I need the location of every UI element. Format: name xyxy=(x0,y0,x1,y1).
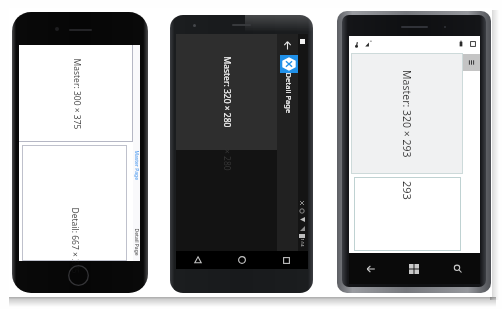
staticText: Master Page xyxy=(132,150,139,180)
button[interactable]: Back xyxy=(349,253,392,284)
button[interactable]: Back xyxy=(176,251,220,269)
staticText: Detail Page xyxy=(283,72,293,113)
other: Navigate up xyxy=(282,40,293,51)
button[interactable]: Home xyxy=(220,251,264,269)
staticText: 1:14 xyxy=(299,238,304,246)
staticText: Master: 320 × 280 xyxy=(220,56,232,127)
staticText: 293 xyxy=(400,181,415,200)
button[interactable]: Search xyxy=(436,253,480,284)
staticText: × 280 xyxy=(221,149,233,171)
button[interactable]: Recent apps xyxy=(264,251,308,269)
staticText: Detail: 667 × 375 xyxy=(68,207,80,274)
staticText: Master: 300 × 375 xyxy=(70,58,82,129)
staticText: Detail Page xyxy=(132,228,139,256)
button[interactable]: Resize xyxy=(463,54,480,71)
button[interactable]: Start xyxy=(392,253,436,284)
staticText: Master: 320 × 293 xyxy=(400,70,414,158)
